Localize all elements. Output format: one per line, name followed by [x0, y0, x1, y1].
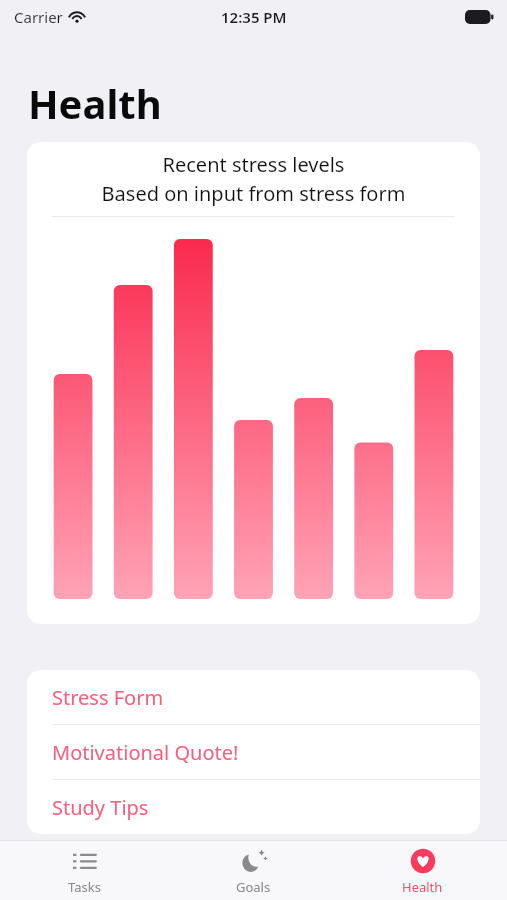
button[interactable]: Study Tips [27, 780, 480, 834]
staticText: Tasks [68, 878, 101, 896]
staticText: Health [402, 878, 443, 896]
staticText: Study Tips [52, 794, 149, 821]
staticText: Health [28, 76, 162, 130]
staticText: Goals [236, 878, 271, 896]
button[interactable]: Health [338, 841, 507, 900]
staticText: 12:35 PM [221, 7, 287, 27]
button[interactable]: Goals [169, 841, 338, 900]
staticText: Recent stress levels [27, 151, 480, 178]
button[interactable]: Tasks [0, 841, 169, 900]
button[interactable]: Motivational Quote! [27, 725, 480, 780]
staticText: Motivational Quote! [52, 739, 239, 766]
staticText: Carrier [14, 7, 63, 27]
staticText: Stress Form [52, 684, 164, 711]
button[interactable]: Stress Form [27, 670, 480, 725]
staticText: Based on input from stress form [27, 180, 480, 207]
